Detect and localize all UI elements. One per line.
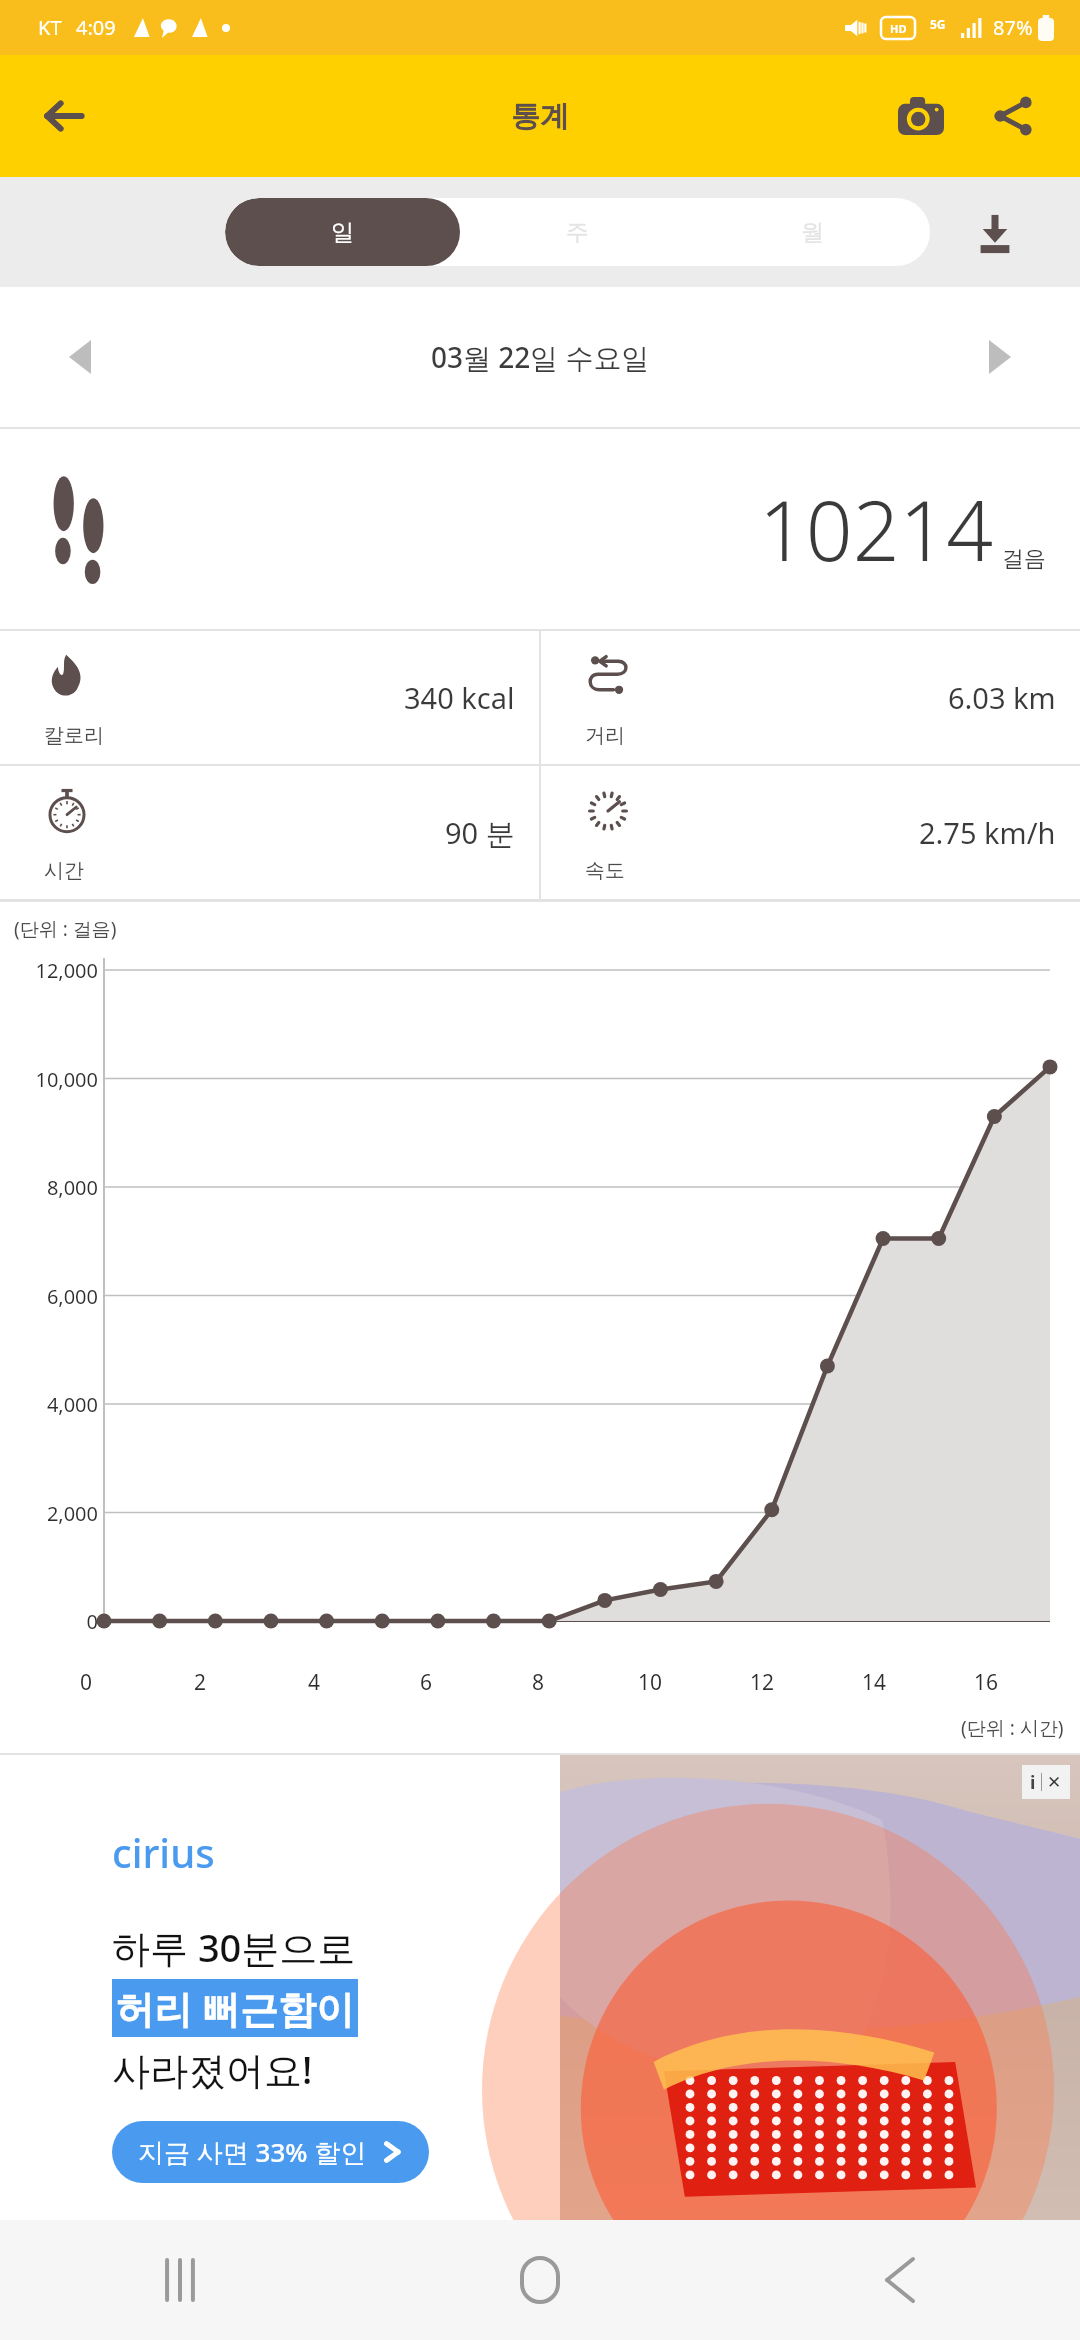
staticText: 시간 [44,858,84,883]
staticText: 12 [750,1668,775,1697]
staticText: 12,000 [35,957,98,984]
button[interactable]: Back [26,78,102,154]
staticText: KT [38,14,62,41]
staticText: 사라졌어요! [112,2043,313,2095]
staticText: 4,000 [46,1391,98,1418]
staticText: 10,000 [35,1066,98,1093]
button[interactable]: Home [360,2220,720,2340]
button[interactable]: 월 [695,198,930,266]
button[interactable]: 속도 [541,766,1080,899]
button[interactable]: Recents [0,2220,360,2340]
staticText: 지금 사면 33% 할인 [138,2134,367,2170]
button[interactable]: Download [930,192,1060,272]
staticText: 10214 [759,473,994,585]
staticText: 월 [801,218,824,247]
staticText: 일 [331,218,354,247]
staticText: 8,000 [46,1174,98,1201]
staticText: 14 [862,1668,887,1697]
button[interactable]: 지금 사면 33% 할인 [138,2121,403,2183]
button[interactable]: 일 [225,198,460,266]
button[interactable]: ✕ [1047,1772,1062,1792]
staticText: 0 [80,1668,93,1697]
staticText: 03월 22일 수요일 [431,338,650,376]
staticText: 87% [993,14,1033,41]
staticText: 6.03 km [948,678,1056,717]
button[interactable]: 거리 [541,631,1080,764]
staticText: HD [890,21,907,36]
button[interactable]: Camera [882,77,960,155]
staticText: 6 [420,1668,433,1697]
staticText: 거리 [585,723,625,748]
staticText: 칼로리 [44,723,104,748]
staticText: 4:09 [76,14,116,41]
staticText: 16 [974,1668,999,1697]
button[interactable]: Share [974,77,1052,155]
staticText: 4 [308,1668,321,1697]
staticText: 속도 [585,858,625,883]
staticText: (단위 : 걸음) [14,916,117,942]
staticText: 8 [532,1668,545,1697]
button[interactable]: cirius [0,1755,1080,2220]
button[interactable]: i [1030,1770,1036,1795]
staticText: 0 [86,1608,98,1635]
staticText: 2 [194,1668,207,1697]
button[interactable]: Back [720,2220,1080,2340]
staticText: 주 [566,218,589,247]
staticText: 5G [930,16,946,32]
staticText: 90 분 [445,813,515,853]
staticText: 하루 30분으로 [112,1921,356,1973]
button[interactable]: 시간 [0,766,539,899]
button[interactable]: Next day [960,317,1040,397]
staticText: 340 kcal [404,678,515,717]
staticText: 6,000 [46,1283,98,1310]
staticText: 2.75 km/h [919,813,1056,852]
staticText: 10 [638,1668,663,1697]
staticText: (단위 : 시간) [961,1715,1064,1741]
staticText: 2,000 [46,1500,98,1527]
staticText: 걸음 [1002,545,1046,573]
button[interactable]: 칼로리 [0,631,539,764]
staticText: cirius [112,1825,215,1879]
staticText: 통계 [511,98,569,135]
staticText: 허리 뻐근함이 [116,1982,354,2034]
button[interactable]: Previous day [40,317,120,397]
